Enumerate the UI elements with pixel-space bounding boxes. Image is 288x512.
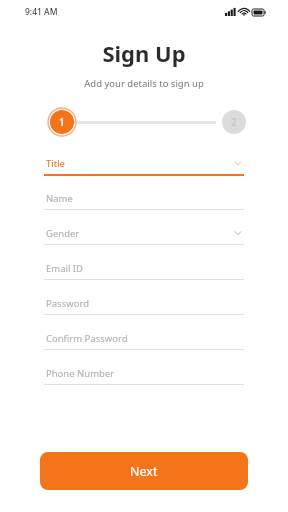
button[interactable]: Phone Number — [44, 362, 244, 397]
staticText: Add your details to sign up — [0, 77, 288, 90]
staticText: Confirm Password — [46, 332, 128, 345]
button[interactable]: Next — [40, 452, 248, 490]
staticText: 1 — [59, 115, 65, 129]
button[interactable]: Step 1 — [47, 107, 77, 137]
staticText: 9:41 AM — [25, 6, 58, 18]
staticText: Email ID — [46, 262, 84, 275]
staticText: Gender — [46, 227, 80, 240]
button[interactable]: Gender — [44, 222, 244, 257]
staticText: Next — [130, 463, 158, 480]
staticText: Title — [46, 157, 65, 170]
button[interactable]: Name — [44, 187, 244, 222]
button[interactable]: Step 2 — [222, 110, 246, 134]
button[interactable]: Email ID — [44, 257, 244, 292]
button[interactable]: Confirm Password — [44, 327, 244, 362]
button[interactable]: Title — [44, 152, 244, 187]
button[interactable]: Password — [44, 292, 244, 327]
staticText: Phone Number — [46, 367, 115, 380]
staticText: 2 — [231, 115, 237, 129]
staticText: Password — [46, 297, 89, 310]
staticText: Name — [46, 192, 73, 205]
staticText: Sign Up — [0, 38, 288, 68]
